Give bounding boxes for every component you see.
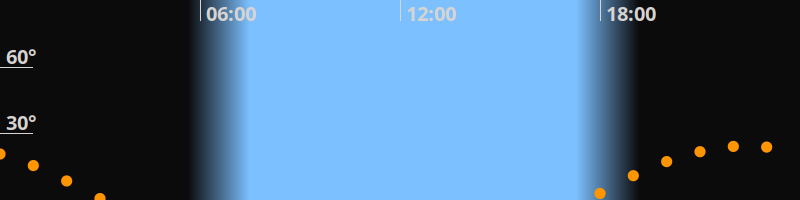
staticText: 06:00: [206, 0, 256, 27]
staticText: 30°: [6, 109, 36, 136]
staticText: 60°: [6, 43, 36, 70]
button[interactable]: Moon altitude chart: [0, 0, 800, 200]
staticText: 12:00: [406, 0, 456, 27]
staticText: 18:00: [606, 0, 656, 27]
